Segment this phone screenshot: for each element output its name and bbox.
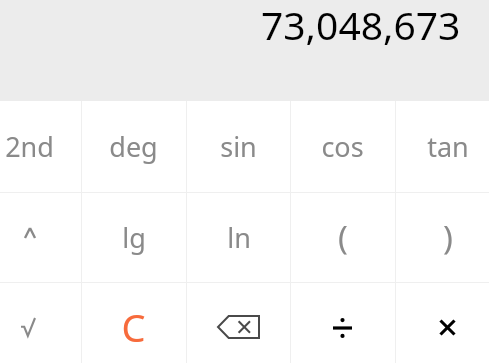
staticText: ): [443, 215, 453, 260]
staticText: deg: [109, 128, 158, 165]
button[interactable]: Square root: [0, 282, 82, 363]
staticText: (: [338, 215, 348, 260]
staticText: tan: [427, 128, 469, 165]
staticText: lg: [122, 219, 146, 256]
button[interactable]: Divide: [290, 282, 395, 363]
button[interactable]: deg: [81, 101, 186, 192]
button[interactable]: tan: [395, 101, 489, 192]
staticText: 73,048,673: [261, 0, 461, 51]
staticText: cos: [321, 128, 364, 165]
button[interactable]: sin: [186, 101, 291, 192]
staticText: C: [121, 301, 146, 353]
button[interactable]: Power: [0, 192, 82, 282]
button[interactable]: 73,048,673: [0, 0, 489, 101]
button[interactable]: ): [395, 192, 489, 282]
staticText: sin: [220, 128, 257, 165]
button[interactable]: cos: [290, 101, 395, 192]
button[interactable]: Multiply: [395, 282, 489, 363]
staticText: ln: [227, 219, 251, 256]
button[interactable]: lg: [81, 192, 186, 282]
staticText: 2nd: [5, 128, 54, 165]
button[interactable]: ln: [186, 192, 291, 282]
button[interactable]: (: [290, 192, 395, 282]
button[interactable]: 2nd: [0, 101, 82, 192]
button[interactable]: Backspace: [186, 282, 291, 363]
button[interactable]: C: [81, 282, 186, 363]
